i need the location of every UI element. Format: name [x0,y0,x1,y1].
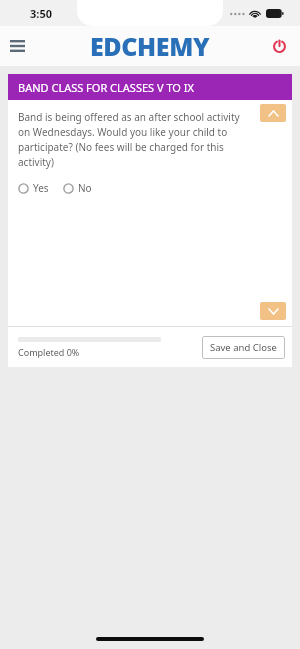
button[interactable]: Logout [264,31,294,61]
button[interactable]: Menu [0,29,34,63]
staticText: 3:50 [30,6,52,21]
staticText: BAND CLASS FOR CLASSES V TO IX [18,80,194,95]
button[interactable]: Save and Close [202,336,285,359]
button[interactable]: No [63,181,92,195]
button[interactable]: Next question [260,302,286,320]
staticText: No [78,181,92,195]
button[interactable]: Yes [18,181,49,195]
button[interactable]: Previous question [260,104,286,122]
staticText: Yes [33,181,49,195]
staticText: Save and Close [210,341,277,354]
staticText: EDCHEMY [90,29,210,63]
staticText: Band is being offered as an after school… [18,110,242,169]
staticText: Completed 0% [18,346,80,358]
